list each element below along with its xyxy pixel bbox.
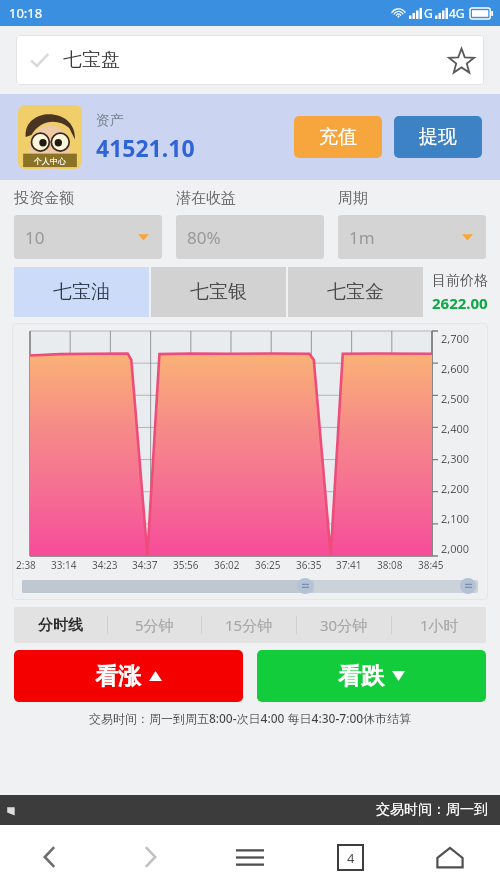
staticText: 个人中心 xyxy=(34,156,66,166)
staticText: 交易时间：周一到 xyxy=(376,801,488,819)
staticText: 5分钟 xyxy=(135,615,174,635)
staticText: 七宝金 xyxy=(327,280,384,304)
staticText: 七宝盘 xyxy=(63,48,120,72)
staticText: 2622.00 xyxy=(432,293,488,313)
button[interactable]: 充值 xyxy=(294,116,382,158)
button[interactable]: 看跌 xyxy=(257,650,486,702)
staticText: 10:18 xyxy=(9,4,43,22)
staticText: 4 xyxy=(347,849,355,867)
staticText: 七宝油 xyxy=(53,280,110,304)
button[interactable]: 80% xyxy=(176,215,324,259)
staticText: 30分钟 xyxy=(320,615,368,635)
button[interactable]: 5分钟 xyxy=(108,607,201,643)
button[interactable]: 1小时 xyxy=(392,607,486,643)
staticText: 33:14 xyxy=(51,558,77,572)
button[interactable]: Home xyxy=(400,825,500,889)
staticText: 潜在收益 xyxy=(176,189,236,208)
button[interactable]: 七宝金 xyxy=(288,267,423,317)
staticText: 周期 xyxy=(338,189,368,208)
button[interactable]: 提现 xyxy=(394,116,482,158)
staticText: 资产 xyxy=(96,112,124,130)
staticText: 37:41 xyxy=(336,558,362,572)
staticText: 34:37 xyxy=(132,558,158,572)
staticText: 38:08 xyxy=(377,558,403,572)
staticText: 2:38 xyxy=(16,558,36,572)
staticText: 36:35 xyxy=(296,558,322,572)
button[interactable]: Tabs: 4 open xyxy=(300,825,400,889)
staticText: 2,100 xyxy=(441,511,470,526)
button[interactable]: 15分钟 xyxy=(202,607,296,643)
staticText: 看跌 xyxy=(338,662,384,691)
button[interactable]: Menu xyxy=(200,825,300,889)
staticText: 2,300 xyxy=(441,451,470,466)
staticText: 2,000 xyxy=(441,541,470,556)
staticText: 15分钟 xyxy=(225,615,273,635)
staticText: 10 xyxy=(25,226,45,249)
staticText: 4G xyxy=(449,5,465,21)
staticText: 2,200 xyxy=(441,481,470,496)
button[interactable]: 10 xyxy=(14,215,162,259)
staticText: 34:23 xyxy=(92,558,118,572)
staticText: 80% xyxy=(187,226,221,249)
button[interactable]: Forward xyxy=(100,825,200,889)
staticText: 投资金额 xyxy=(14,189,74,208)
staticText: 目前价格 xyxy=(432,272,488,290)
button[interactable]: 七宝盘 xyxy=(16,35,484,85)
staticText: 1小时 xyxy=(420,615,459,635)
staticText: 2,700 xyxy=(441,331,470,346)
button[interactable]: Add to favorites xyxy=(438,37,484,83)
staticText: 提现 xyxy=(419,125,457,149)
staticText: 2,400 xyxy=(441,421,470,436)
staticText: 2,600 xyxy=(441,361,470,376)
button[interactable]: Personal center xyxy=(18,105,82,169)
button[interactable]: 分时线 xyxy=(14,607,107,643)
button[interactable]: 看涨 xyxy=(14,650,243,702)
button[interactable]: Back xyxy=(0,825,100,889)
staticText: 41521.10 xyxy=(96,132,195,163)
staticText: G xyxy=(424,5,433,21)
button[interactable]: Chart range xyxy=(22,577,478,595)
staticText: 38:45 xyxy=(418,558,444,572)
staticText: 分时线 xyxy=(38,616,83,635)
button[interactable]: 1m xyxy=(338,215,486,259)
staticText: 充值 xyxy=(319,125,357,149)
button[interactable]: 30分钟 xyxy=(297,607,391,643)
staticText: 看涨 xyxy=(95,662,141,691)
staticText: 2,500 xyxy=(441,391,470,406)
button[interactable]: 七宝油 xyxy=(14,267,149,317)
staticText: 36:02 xyxy=(214,558,240,572)
staticText: 35:56 xyxy=(173,558,199,572)
staticText: 1m xyxy=(349,226,375,249)
staticText: 交易时间：周一到周五8:00-次日4:00 每日4:30-7:00休市结算 xyxy=(14,710,486,726)
staticText: 七宝银 xyxy=(190,280,247,304)
button[interactable]: 七宝银 xyxy=(151,267,286,317)
staticText: 36:25 xyxy=(255,558,281,572)
